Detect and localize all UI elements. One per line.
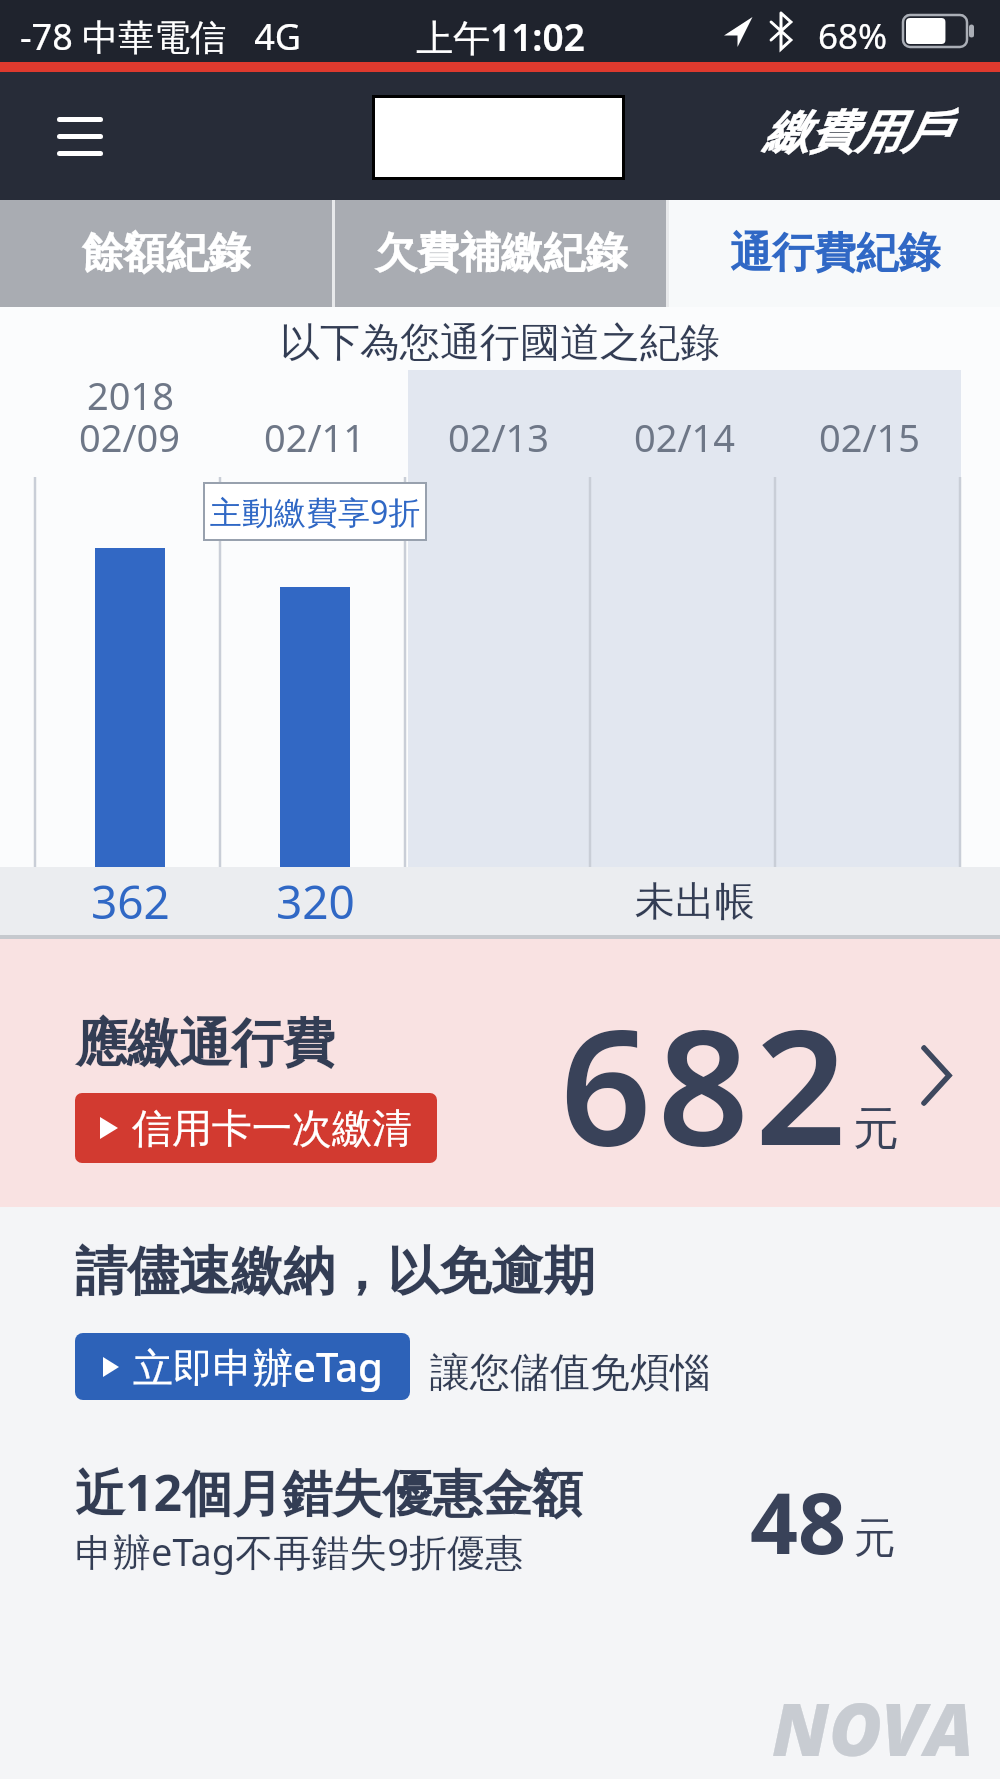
staticText: 以下為您通行國道之紀錄 — [280, 317, 720, 367]
staticText: 讓您儲值免煩惱 — [430, 1347, 710, 1397]
staticText: 2018 — [87, 369, 174, 421]
staticText: 682 — [560, 974, 853, 1192]
staticText: 近12個月錯失優惠金額 — [75, 1458, 583, 1526]
button[interactable]: 繳費用戶 — [763, 104, 947, 162]
button[interactable]: 信用卡一次繳清 — [75, 1093, 437, 1163]
staticText: 欠費補繳紀錄 — [375, 227, 627, 280]
button[interactable] — [540, 959, 980, 1189]
staticText: 02/13 — [448, 411, 550, 463]
staticText: 02/09 — [79, 411, 181, 463]
staticText: 請儘速繳納，以免逾期 — [75, 1239, 595, 1305]
staticText: 通行費紀錄 — [730, 227, 940, 280]
staticText: 02/14 — [634, 411, 736, 463]
staticText: 申辦eTag不再錯失9折優惠 — [75, 1525, 523, 1577]
button[interactable]: 通行費紀錄 — [669, 200, 1000, 307]
button[interactable] — [40, 100, 120, 172]
staticText: 元 — [854, 1512, 896, 1565]
staticText: 應繳通行費 — [75, 1011, 335, 1077]
staticText: 立即申辦eTag — [133, 1339, 383, 1394]
staticText: 362 — [91, 870, 170, 933]
staticText: 元 — [853, 1100, 899, 1158]
button[interactable]: 餘額紀錄 — [0, 200, 332, 307]
staticText: -78 中華電信 4G — [20, 12, 302, 61]
staticText: NOVA — [772, 1679, 974, 1777]
staticText: 信用卡一次繳清 — [132, 1103, 412, 1153]
staticText: 02/15 — [819, 411, 921, 463]
staticText: 68% — [818, 12, 888, 60]
staticText: 未出帳 — [635, 876, 755, 926]
staticText: 主動繳費享9折 — [210, 490, 421, 534]
button[interactable]: 立即申辦eTag — [75, 1333, 410, 1400]
staticText: 上午11:02 — [416, 11, 585, 62]
staticText: 02/11 — [264, 411, 366, 463]
staticText: 48 — [750, 1464, 847, 1578]
staticText: 餘額紀錄 — [82, 227, 250, 280]
staticText: 320 — [276, 870, 355, 933]
button[interactable]: 欠費補繳紀錄 — [335, 200, 666, 307]
